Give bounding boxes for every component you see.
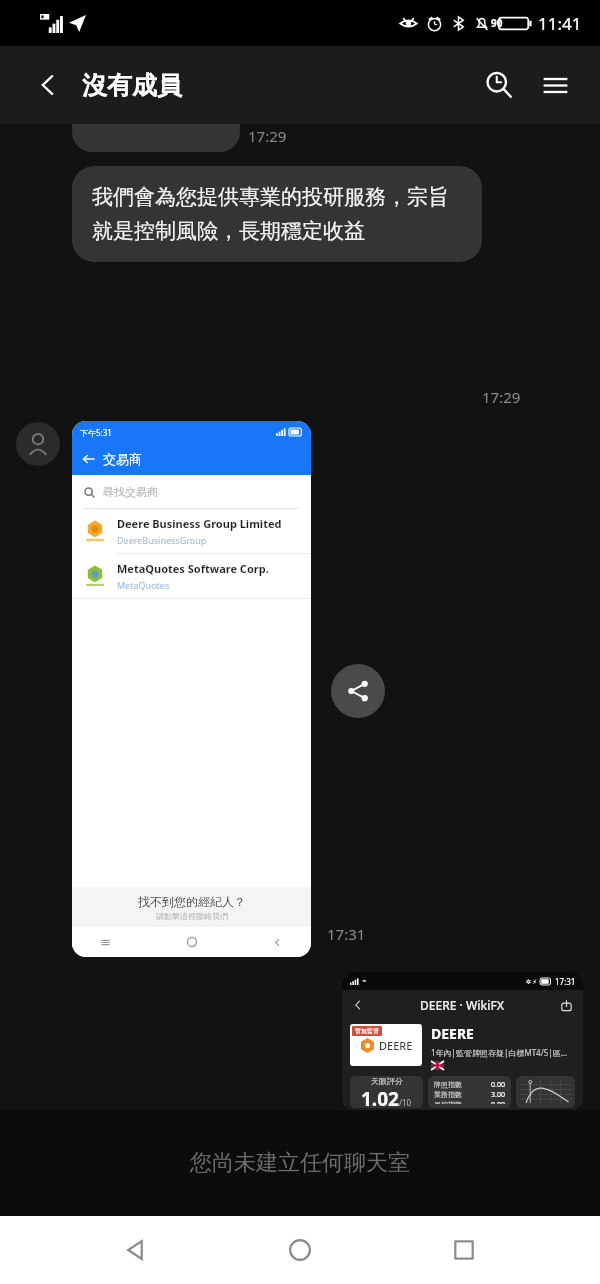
button[interactable]: Avatar <box>16 422 60 466</box>
staticText: 17:29 <box>482 387 521 407</box>
button[interactable]: Back <box>108 1222 164 1278</box>
button[interactable]: Screenshot of broker list <box>72 421 311 957</box>
button[interactable]: MetaQuotes Software Corp. <box>72 554 311 598</box>
button[interactable]: Search history <box>476 62 522 108</box>
staticText: 我們會為您提供專業的投研服務，宗旨就是控制風險，長期穩定收益 <box>92 184 462 244</box>
staticText: 90 <box>491 16 503 30</box>
staticText: 請點擊這裡聯絡我們 <box>156 911 228 921</box>
staticText: 尋找交易商 <box>103 485 158 499</box>
staticText: /10 <box>399 1097 412 1108</box>
button[interactable] <box>72 124 240 152</box>
staticText: Deere Business Group Limited <box>117 516 282 531</box>
button[interactable]: Deere Business Group Limited <box>72 509 311 553</box>
staticText: 暫無監管 <box>355 1027 379 1035</box>
staticText: 下午5:31 <box>80 427 112 438</box>
staticText: 17:29 <box>248 126 287 146</box>
staticText: MetaQuotes <box>117 579 170 591</box>
staticText: 您尚未建立任何聊天室 <box>190 1149 410 1177</box>
staticText: 業務指數 <box>434 1090 462 1099</box>
staticText: DEERE <box>379 1038 413 1053</box>
button[interactable]: 我們會為您提供專業的投研服務，宗旨就是控制風險，長期穩定收益 <box>72 166 482 262</box>
button[interactable]: Recents <box>436 1222 492 1278</box>
staticText: ⌁ <box>362 977 367 985</box>
staticText: 沒有成員 <box>82 70 182 101</box>
staticText: 1.02 <box>361 1086 399 1108</box>
staticText: 11:41 <box>538 12 582 35</box>
staticText: 交易商 <box>103 451 142 467</box>
staticText: 找不到您的經紀人？ <box>138 894 246 909</box>
staticText: ✲ ⚡ <box>526 978 537 986</box>
button[interactable]: Home <box>272 1222 328 1278</box>
staticText: MetaQuotes Software Corp. <box>117 561 269 576</box>
staticText: 17:31 <box>555 976 576 987</box>
staticText: 0.00 <box>491 1080 505 1090</box>
staticText: 1年內|監管牌照存疑|白標MT4/5|區… <box>431 1047 567 1058</box>
staticText: 風控指數 <box>434 1100 462 1104</box>
staticText: 3.00 <box>491 1090 505 1100</box>
staticText: 牌照指數 <box>434 1080 462 1089</box>
button[interactable]: Screenshot of broker detail <box>342 972 583 1110</box>
staticText: 天眼評分 <box>371 1076 403 1086</box>
staticText: DeereBusinessGroup <box>117 534 207 546</box>
staticText: 17:31 <box>327 924 366 944</box>
staticText: DEERE <box>431 1024 474 1043</box>
button[interactable]: Menu <box>532 62 578 108</box>
button[interactable]: Share <box>331 664 385 718</box>
staticText: 0.00 <box>491 1100 505 1104</box>
staticText: DEERE · WikiFX <box>420 997 505 1013</box>
button[interactable]: Back <box>26 63 70 107</box>
